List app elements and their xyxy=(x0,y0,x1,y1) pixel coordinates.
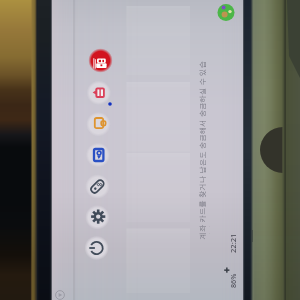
staticText: 계좌 카드를 찾거나 남은도 송금해서 송금하실 수 있습니다. xyxy=(196,59,209,239)
button[interactable]: Refresh xyxy=(85,236,108,259)
staticText: 86% xyxy=(228,273,238,288)
staticText: 22:21 xyxy=(228,233,238,253)
button[interactable] xyxy=(127,229,191,294)
button[interactable]: Cards xyxy=(87,82,110,105)
button[interactable]: Profile xyxy=(217,4,234,21)
button[interactable]: Wallet xyxy=(87,113,110,136)
button[interactable]: Pay xyxy=(89,50,112,73)
button[interactable]: Coupons xyxy=(85,175,108,198)
button[interactable]: Settings xyxy=(85,206,108,229)
button[interactable]: ID card xyxy=(86,144,109,167)
